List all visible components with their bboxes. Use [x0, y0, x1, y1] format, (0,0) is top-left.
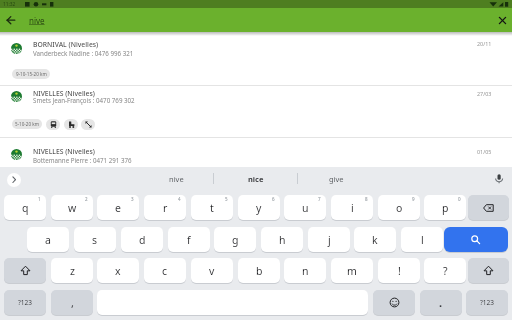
- button[interactable]: nive: [146, 167, 206, 190]
- button[interactable]: ?123: [466, 290, 508, 315]
- button[interactable]: [491, 171, 507, 187]
- staticText: .: [439, 295, 443, 310]
- button[interactable]: 9-10-15-20 km: [12, 69, 50, 79]
- staticText: NIVELLES (Nivelles): [33, 147, 95, 156]
- button[interactable]: c: [144, 258, 186, 283]
- button[interactable]: o: [378, 195, 420, 220]
- button[interactable]: t: [191, 195, 233, 220]
- button[interactable]: [468, 195, 509, 220]
- button[interactable]: ?: [424, 258, 466, 283]
- staticText: 9-10-15-20 km: [16, 71, 47, 77]
- button[interactable]: [7, 173, 21, 187]
- button[interactable]: l: [401, 227, 443, 252]
- staticText: i: [351, 201, 354, 215]
- staticText: 7: [318, 196, 321, 202]
- staticText: 11:32: [3, 1, 16, 8]
- staticText: l: [421, 233, 424, 247]
- staticText: f: [187, 233, 191, 247]
- button[interactable]: v: [191, 258, 233, 283]
- staticText: nice: [248, 174, 264, 184]
- button[interactable]: nice: [226, 167, 286, 190]
- staticText: a: [45, 233, 51, 247]
- button[interactable]: .: [420, 290, 462, 315]
- button[interactable]: [81, 119, 95, 130]
- button[interactable]: [0, 138, 512, 167]
- staticText: 2: [85, 196, 88, 202]
- button[interactable]: a: [27, 227, 69, 252]
- button[interactable]: r: [144, 195, 186, 220]
- button[interactable]: u: [284, 195, 326, 220]
- staticText: g: [232, 233, 239, 247]
- staticText: r: [163, 201, 168, 215]
- button[interactable]: [373, 290, 415, 315]
- staticText: o: [396, 201, 403, 215]
- button[interactable]: k: [354, 227, 396, 252]
- button[interactable]: i: [331, 195, 373, 220]
- staticText: k: [372, 233, 378, 247]
- staticText: v: [209, 264, 215, 278]
- button[interactable]: b: [238, 258, 280, 283]
- staticText: ?123: [18, 298, 32, 307]
- button[interactable]: f: [168, 227, 210, 252]
- staticText: nive: [29, 15, 45, 26]
- staticText: 6: [272, 196, 275, 202]
- staticText: t: [210, 201, 214, 215]
- staticText: h: [279, 233, 286, 247]
- staticText: 1: [38, 196, 41, 202]
- staticText: 0: [458, 196, 461, 202]
- button[interactable]: j: [308, 227, 350, 252]
- staticText: z: [70, 264, 75, 278]
- staticText: ?: [443, 264, 448, 278]
- button[interactable]: [497, 15, 508, 26]
- staticText: Vanderbeck Nadine : 0476 996 321: [33, 49, 134, 57]
- button[interactable]: !: [378, 258, 420, 283]
- staticText: p: [442, 201, 449, 215]
- button[interactable]: e: [97, 195, 139, 220]
- staticText: s: [92, 233, 98, 247]
- staticText: BORNIVAL (Nivelles): [33, 40, 99, 49]
- button[interactable]: give: [306, 167, 366, 190]
- button[interactable]: ,: [51, 290, 93, 315]
- staticText: e: [115, 201, 121, 215]
- staticText: 5: [225, 196, 228, 202]
- button[interactable]: [468, 258, 509, 283]
- button[interactable]: x: [97, 258, 139, 283]
- button[interactable]: g: [214, 227, 256, 252]
- staticText: j: [328, 233, 331, 247]
- staticText: b: [256, 264, 263, 278]
- button[interactable]: h: [261, 227, 303, 252]
- staticText: NIVELLES (Nivelles): [33, 89, 95, 98]
- button[interactable]: [64, 119, 78, 130]
- button[interactable]: q: [4, 195, 46, 220]
- button[interactable]: p: [424, 195, 466, 220]
- staticText: 5-10-20 km: [15, 121, 40, 127]
- button[interactable]: m: [331, 258, 373, 283]
- button[interactable]: y: [238, 195, 280, 220]
- staticText: m: [347, 264, 357, 278]
- button[interactable]: [46, 119, 60, 130]
- staticText: 3: [131, 196, 134, 202]
- button[interactable]: s: [74, 227, 116, 252]
- staticText: Bottemanne Pierre : 0471 291 376: [33, 156, 132, 164]
- staticText: !: [398, 264, 401, 278]
- button[interactable]: [4, 258, 46, 283]
- staticText: d: [139, 233, 146, 247]
- staticText: w: [68, 201, 77, 215]
- staticText: Smets Jean-François : 0470 769 302: [33, 96, 135, 104]
- staticText: ?123: [480, 298, 494, 307]
- button[interactable]: 5-10-20 km: [12, 119, 42, 129]
- staticText: 8: [365, 196, 368, 202]
- button[interactable]: d: [121, 227, 163, 252]
- button[interactable]: [0, 86, 512, 137]
- button[interactable]: n: [284, 258, 326, 283]
- staticText: 20/11: [477, 40, 492, 47]
- button[interactable]: [0, 35, 512, 85]
- staticText: y: [256, 201, 262, 215]
- button[interactable]: [444, 227, 508, 252]
- button[interactable]: z: [51, 258, 93, 283]
- button[interactable]: ?123: [4, 290, 46, 315]
- button[interactable]: w: [51, 195, 93, 220]
- button[interactable]: [5, 14, 17, 26]
- staticText: 4: [178, 196, 181, 202]
